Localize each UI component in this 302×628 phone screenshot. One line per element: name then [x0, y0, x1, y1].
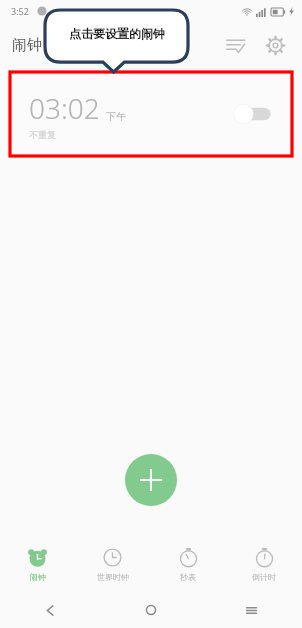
staticText: 秒表: [180, 572, 196, 582]
button[interactable]: 03:02: [13, 75, 289, 153]
staticText: 闹钟: [12, 36, 42, 55]
staticText: 闹钟: [30, 572, 46, 582]
staticText: 倒计时: [252, 572, 276, 582]
staticText: 不重复: [29, 129, 56, 140]
staticText: 点击要设置的闹钟: [69, 26, 165, 41]
button[interactable]: 世界时钟: [75, 541, 150, 588]
staticText: 3:52: [11, 5, 29, 17]
button[interactable]: Recents: [201, 592, 302, 628]
button[interactable]: Back: [0, 592, 100, 628]
staticText: 03:02: [29, 89, 100, 127]
staticText: 下午: [106, 110, 126, 123]
button[interactable]: Select alarms: [218, 28, 252, 62]
button[interactable]: Add alarm: [125, 454, 177, 506]
staticText: 世界时钟: [97, 572, 129, 582]
button[interactable]: 秒表: [150, 541, 226, 588]
button[interactable]: 闹钟: [0, 541, 75, 588]
button[interactable]: Toggle alarm: [233, 102, 273, 126]
button[interactable]: 倒计时: [226, 541, 302, 588]
button[interactable]: Home: [100, 592, 201, 628]
button[interactable]: Settings: [258, 28, 292, 62]
